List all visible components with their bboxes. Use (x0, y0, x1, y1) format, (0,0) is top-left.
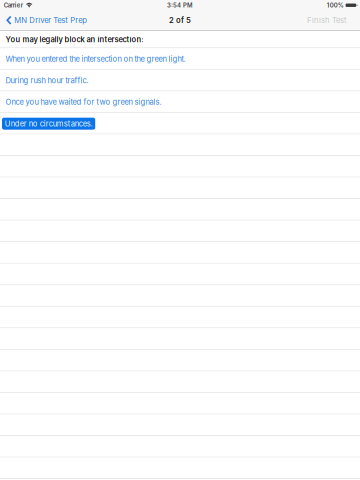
button[interactable]: Under no circumstances. (0, 113, 360, 134)
button[interactable]: MN Driver Test Prep (0, 14, 87, 27)
staticText: Under no circumstances. (5, 119, 93, 128)
staticText: 100% (327, 2, 344, 9)
staticText: Once you have waited for two green signa… (5, 97, 161, 107)
staticText: 3:54 PM (167, 2, 193, 9)
button[interactable]: Finish Test (307, 14, 360, 27)
staticText: Carrier (4, 2, 23, 9)
button[interactable]: Once you have waited for two green signa… (0, 91, 360, 113)
button[interactable]: When you entered the intersection on the… (0, 48, 360, 70)
staticText: During rush hour traffic. (5, 76, 88, 85)
staticText: Finish Test (307, 16, 347, 25)
staticText: When you entered the intersection on the… (5, 54, 185, 64)
staticText: MN Driver Test Prep (14, 16, 87, 25)
button[interactable]: During rush hour traffic. (0, 70, 360, 91)
staticText: You may legally block an intersection: (5, 35, 143, 44)
staticText: 2 of 5 (169, 16, 191, 25)
